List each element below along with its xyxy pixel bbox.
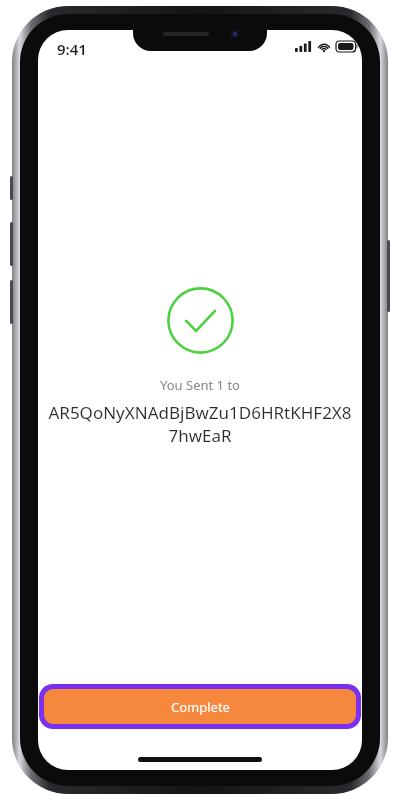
staticText: AR5QoNyXNAdBjBwZu1D6HRtKHF2X87hwEaR [44,401,356,447]
staticText: You Sent 1 to [160,376,240,394]
staticText: Complete [171,698,230,716]
button[interactable]: Complete [44,689,356,724]
staticText: 9:41 [57,39,87,59]
